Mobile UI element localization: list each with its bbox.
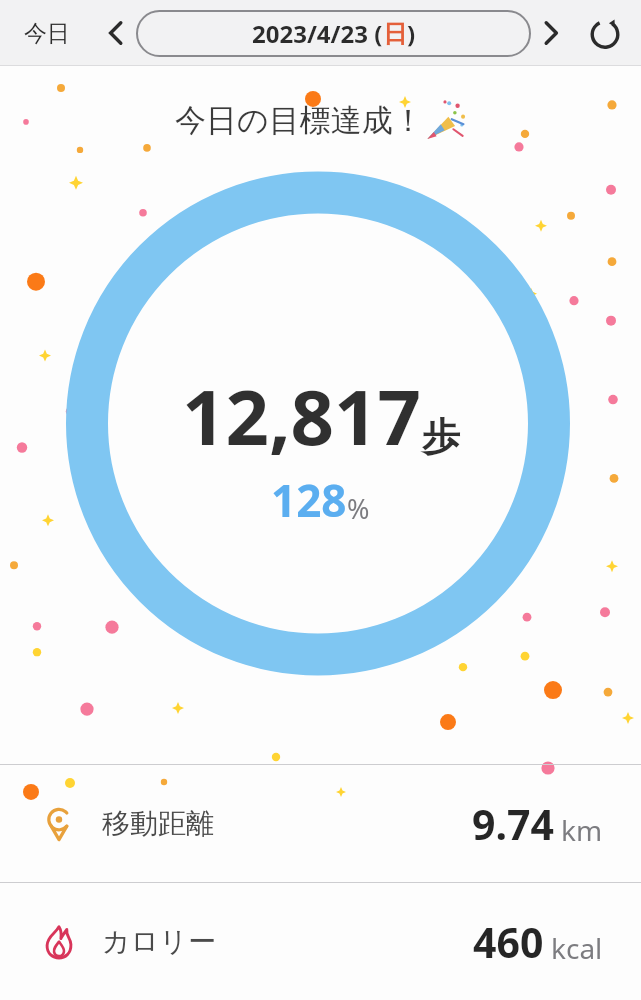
button[interactable]: 今日 bbox=[14, 11, 80, 56]
staticText: kcal bbox=[551, 929, 603, 967]
staticText: 歩 bbox=[422, 413, 460, 461]
staticText: km bbox=[561, 811, 603, 849]
button[interactable]: Refresh bbox=[583, 11, 627, 55]
staticText: 今日 bbox=[24, 19, 70, 48]
staticText: 今日の目標達成！ bbox=[175, 101, 424, 140]
staticText: 日 bbox=[383, 19, 407, 49]
staticText: カロリー bbox=[102, 924, 216, 959]
button[interactable]: Next day bbox=[531, 13, 571, 53]
staticText: ) bbox=[407, 17, 416, 50]
staticText: 128 bbox=[271, 470, 347, 530]
button[interactable]: 移動距離 bbox=[0, 765, 641, 882]
staticText: 9.74 bbox=[472, 796, 554, 852]
button[interactable]: カロリー bbox=[0, 883, 641, 1000]
staticText: 移動距離 bbox=[102, 806, 214, 841]
staticText: 2023/4/23 ( bbox=[252, 17, 383, 50]
button[interactable]: Previous day bbox=[96, 13, 136, 53]
button[interactable]: 2023/4/23 ( bbox=[136, 10, 531, 57]
staticText: % bbox=[347, 490, 370, 527]
staticText: 460 bbox=[473, 914, 544, 970]
staticText: 12,817 bbox=[182, 364, 422, 468]
